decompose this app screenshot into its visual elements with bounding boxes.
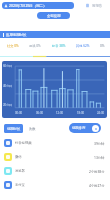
button[interactable]: 次数: [26, 124, 39, 133]
staticText: 周报告: [92, 4, 103, 8]
button[interactable]: 浏览器: [0, 164, 110, 178]
staticText: 40分钟: [3, 84, 12, 88]
staticText: 12:00: [56, 111, 64, 115]
staticText: 影音 38%: [52, 44, 66, 48]
staticText: 其他 62%: [76, 44, 90, 48]
staticText: 13分钟: [94, 155, 105, 160]
staticText: 2小时38分: [89, 169, 105, 174]
button[interactable]: 抖音短视频: [0, 136, 110, 150]
staticText: 60分钟: [3, 64, 12, 68]
button[interactable]: 微信: [0, 150, 110, 164]
staticText: 抖音短视频: [15, 141, 32, 145]
button[interactable]: Report: [85, 2, 103, 9]
staticText: 浏览器: [15, 169, 25, 173]
staticText: 2023年7月25日（周二）: [9, 3, 47, 8]
staticText: 06:00: [36, 111, 44, 115]
staticText: 微信: [15, 155, 22, 159]
button[interactable]: 2023年7月25日（周二）: [2, 2, 74, 9]
staticText: 游戏 0%: [29, 44, 41, 48]
button[interactable]: 使用排序: [69, 123, 101, 133]
button[interactable]: 使用时长: [4, 124, 23, 133]
staticText: 20分钟: [3, 103, 12, 107]
staticText: 应用使用时长: [6, 33, 27, 37]
staticText: 次数: [29, 127, 36, 131]
staticText: 00:00: [15, 111, 23, 115]
staticText: 4小时27分: [89, 183, 105, 188]
staticText: 18:00: [77, 111, 85, 115]
staticText: 使用时长: [7, 127, 21, 131]
button[interactable]: 全部应用: [37, 12, 70, 19]
staticText: 39分钟: [94, 141, 105, 146]
button[interactable]: 支付宝: [0, 178, 110, 192]
staticText: 支付宝: [15, 183, 25, 187]
staticText: 0%: [100, 44, 105, 48]
staticText: 社交 0%: [7, 44, 19, 48]
staticText: 24:00: [97, 111, 105, 115]
staticText: 使用排序: [72, 126, 86, 130]
staticText: 全部应用: [47, 14, 61, 18]
